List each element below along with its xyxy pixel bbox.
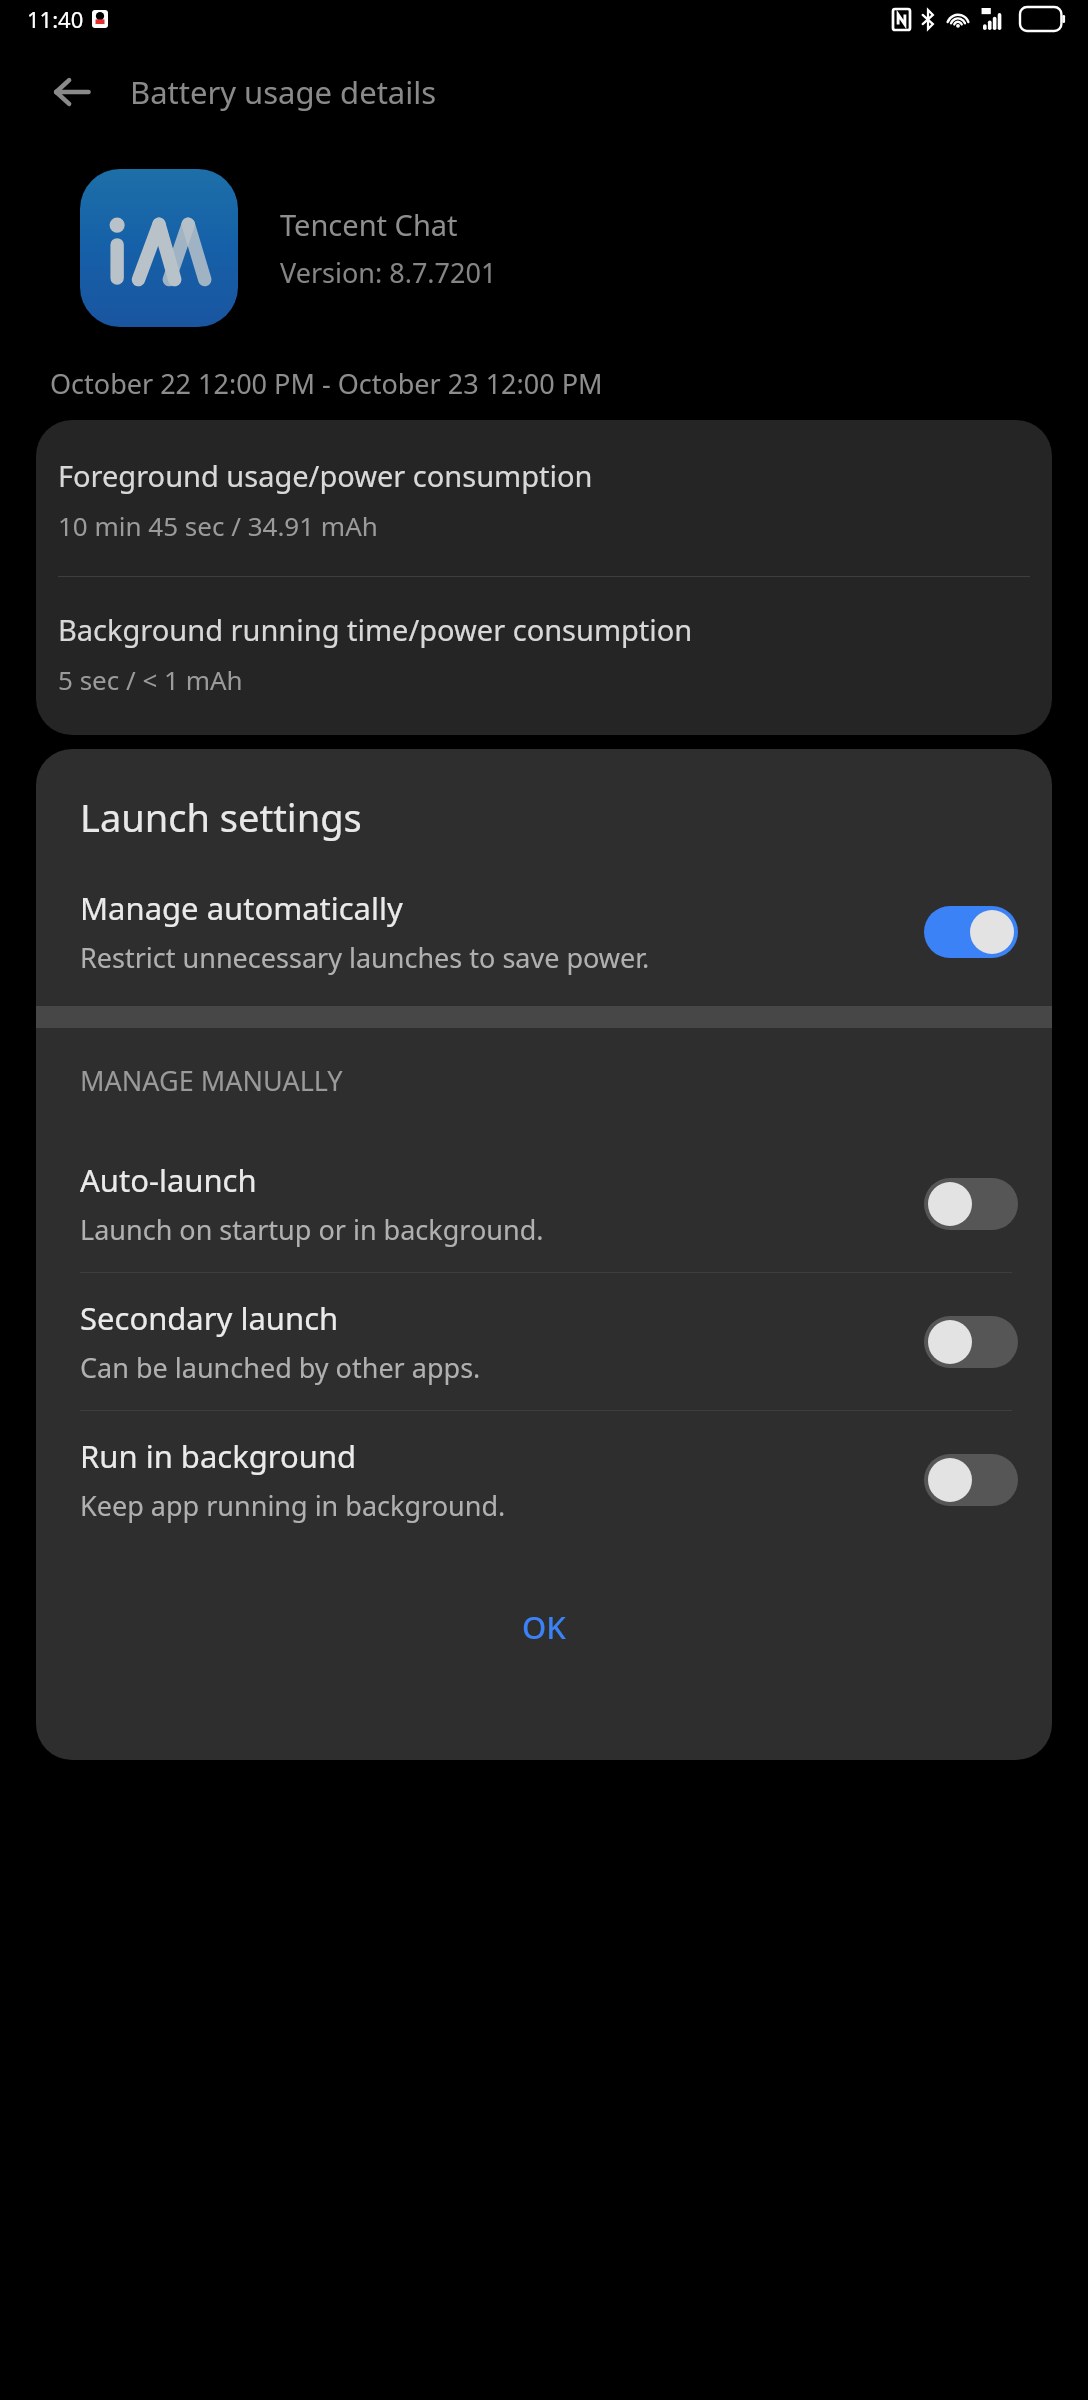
button[interactable]: Secondary launch xyxy=(36,1273,1052,1410)
button[interactable]: Toggle off xyxy=(924,1178,1018,1230)
button[interactable]: Auto-launch xyxy=(36,1135,1052,1272)
staticText: Run in background xyxy=(80,1435,357,1477)
staticText: 10 min 45 sec / 34.91 mAh xyxy=(58,508,378,543)
staticText: Launch on startup or in background. xyxy=(80,1211,544,1248)
staticText: 11:40 xyxy=(27,4,84,34)
staticText: Version: 8.7.7201 xyxy=(280,254,497,291)
button[interactable]: Manage automatically xyxy=(36,887,1052,1006)
staticText: Battery usage details xyxy=(130,71,437,113)
button[interactable]: Toggle off xyxy=(924,1316,1018,1368)
staticText: MANAGE MANUALLY xyxy=(80,1062,343,1099)
staticText: Restrict unnecessary launches to save po… xyxy=(80,939,650,976)
button[interactable]: Toggle on xyxy=(924,906,1018,958)
staticText: OK xyxy=(522,1606,566,1648)
staticText: Auto-launch xyxy=(80,1159,257,1201)
staticText: Background running time/power consumptio… xyxy=(58,610,693,649)
staticText: Can be launched by other apps. xyxy=(80,1349,481,1386)
button[interactable]: Back xyxy=(40,60,104,124)
button[interactable]: OK xyxy=(482,1594,606,1660)
staticText: Launch settings xyxy=(80,791,362,843)
staticText: Tencent Chat xyxy=(280,205,458,244)
staticText: Keep app running in background. xyxy=(80,1487,506,1524)
button[interactable]: Run in background xyxy=(36,1411,1052,1548)
button[interactable]: Toggle off xyxy=(924,1454,1018,1506)
staticText: Foreground usage/power consumption xyxy=(58,456,593,495)
staticText: Manage automatically xyxy=(80,887,403,929)
staticText: 5 sec / < 1 mAh xyxy=(58,662,243,697)
staticText: Secondary launch xyxy=(80,1297,339,1339)
staticText: October 22 12:00 PM - October 23 12:00 P… xyxy=(50,365,603,402)
